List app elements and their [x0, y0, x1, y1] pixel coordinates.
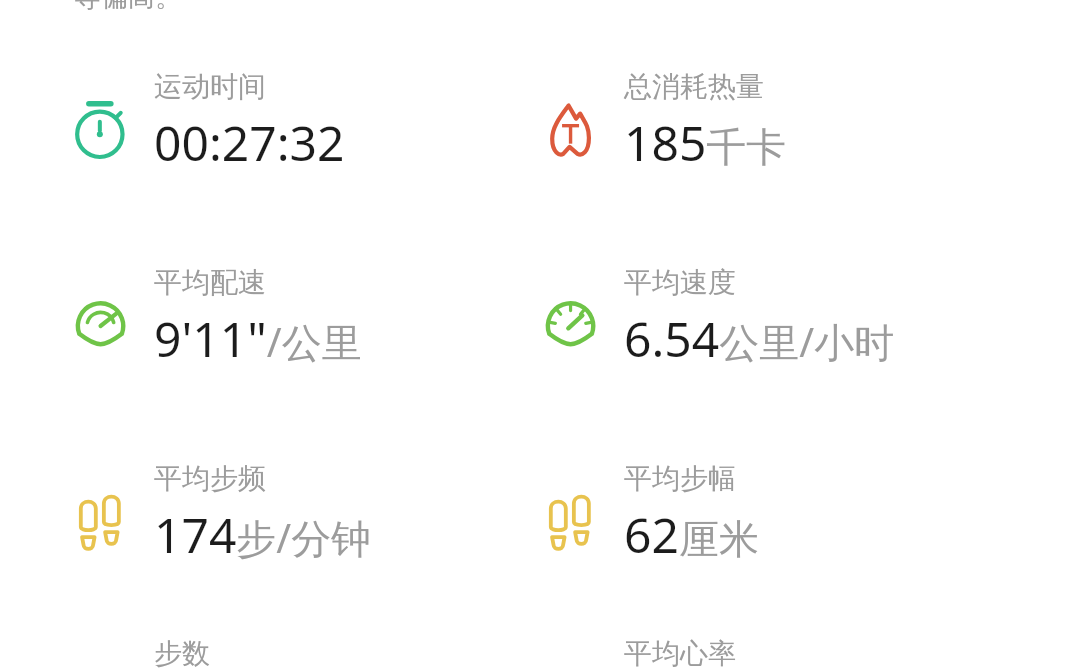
- staticText: 185千卡: [624, 110, 787, 175]
- button[interactable]: Average speed: [536, 248, 976, 388]
- other: Average pace: [66, 290, 138, 362]
- staticText: 平均心率: [624, 636, 736, 669]
- staticText: 174步/分钟: [154, 502, 372, 567]
- staticText: 平均步频: [154, 461, 266, 496]
- staticText: 平均配速: [154, 265, 266, 300]
- button[interactable]: Calories: [536, 52, 976, 192]
- staticText: 00:27:32: [154, 110, 345, 175]
- staticText: 导偏高。: [74, 0, 182, 14]
- other: Average cadence: [66, 486, 138, 558]
- staticText: 9'11"/公里: [154, 306, 362, 371]
- staticText: 运动时间: [154, 69, 266, 104]
- staticText: 平均步幅: [624, 461, 736, 496]
- staticText: 总消耗热量: [624, 69, 764, 104]
- button[interactable]: Average stride: [536, 444, 976, 584]
- button[interactable]: Average pace: [66, 248, 506, 388]
- other: Duration: [66, 94, 138, 166]
- staticText: 62厘米: [624, 502, 759, 567]
- button[interactable]: Average cadence: [66, 444, 506, 584]
- other: Calories: [536, 94, 608, 166]
- staticText: 平均速度: [624, 265, 736, 300]
- other: Average stride: [536, 486, 608, 558]
- button[interactable]: Duration: [66, 52, 506, 192]
- staticText: 步数: [154, 636, 210, 669]
- other: Average speed: [536, 290, 608, 362]
- staticText: 6.54公里/小时: [624, 306, 895, 371]
